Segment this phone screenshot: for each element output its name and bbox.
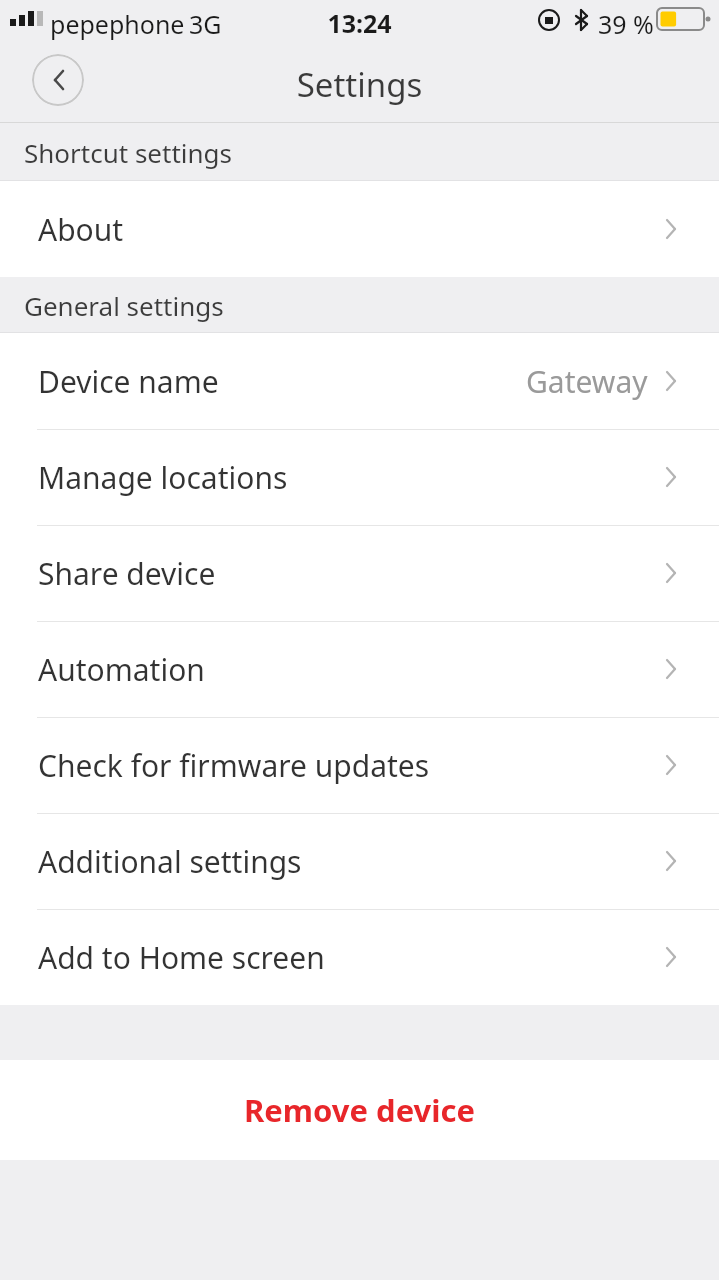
button[interactable]: Additional settings	[0, 813, 719, 909]
button[interactable]: Manage locations	[0, 429, 719, 525]
staticText: Manage locations	[38, 457, 288, 498]
button[interactable]: Device name	[0, 333, 719, 429]
button[interactable]: Add to Home screen	[0, 909, 719, 1005]
staticText: Shortcut settings	[24, 135, 233, 170]
staticText: Device name	[38, 361, 219, 402]
staticText: Remove device	[244, 1089, 476, 1131]
button[interactable]: Remove device	[0, 1060, 719, 1160]
staticText: Automation	[38, 649, 205, 690]
staticText: 13:24	[0, 6, 719, 40]
staticText: 39 %	[598, 7, 654, 41]
staticText: Check for firmware updates	[38, 745, 430, 786]
button[interactable]: Check for firmware updates	[0, 717, 719, 813]
button[interactable]: Share device	[0, 525, 719, 621]
staticText: Settings	[0, 62, 719, 107]
staticText: Additional settings	[38, 841, 302, 882]
button[interactable]: Automation	[0, 621, 719, 717]
staticText: Gateway	[526, 361, 648, 402]
staticText: pepephone	[50, 7, 185, 41]
button[interactable]: Back	[32, 54, 84, 106]
staticText: Add to Home screen	[38, 937, 325, 978]
staticText: Share device	[38, 553, 216, 594]
staticText: 3G	[189, 7, 222, 41]
staticText: General settings	[24, 288, 224, 323]
staticText: About	[38, 209, 124, 250]
